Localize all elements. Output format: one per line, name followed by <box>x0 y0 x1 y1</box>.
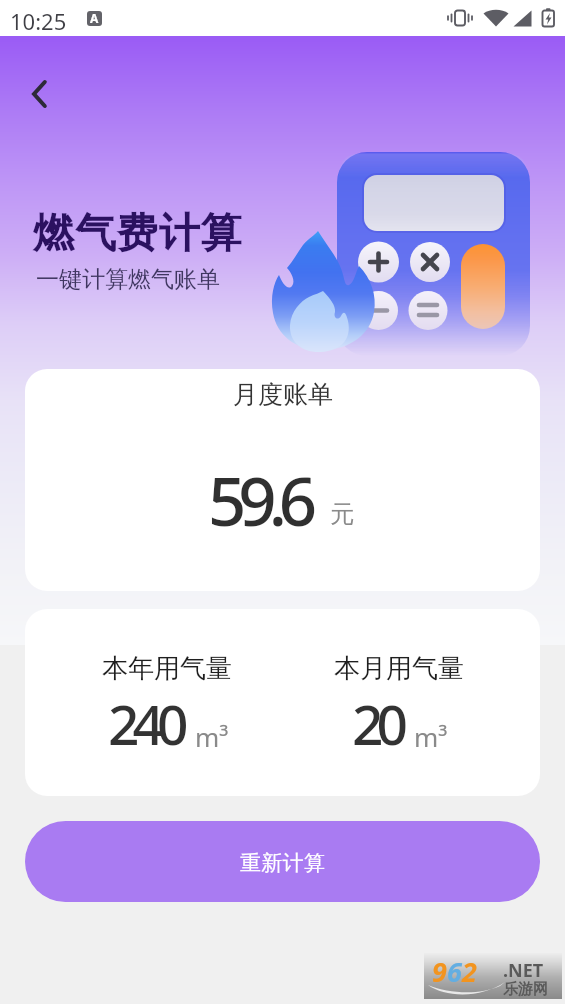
staticText: 本年用气量 <box>102 652 232 685</box>
staticText: m³ <box>414 719 448 754</box>
staticText: 一键计算燃气账单 <box>36 265 220 294</box>
staticText: m³ <box>195 719 229 754</box>
staticText: 240 <box>108 686 182 761</box>
button[interactable]: 本年用气量 <box>25 609 540 796</box>
staticText: 燃气费计算 <box>33 208 243 260</box>
staticText: 9 <box>432 953 447 990</box>
staticText: 本月用气量 <box>334 652 464 685</box>
button[interactable]: 重新计算 <box>25 821 540 902</box>
staticText: 59.6 <box>208 454 310 545</box>
staticText: 10:25 <box>10 6 67 36</box>
staticText: 2 <box>462 953 477 990</box>
staticText: .NET <box>503 958 544 983</box>
staticText: 20 <box>352 686 401 761</box>
staticText: 月度账单 <box>233 379 333 410</box>
staticText: A <box>90 11 99 25</box>
staticText: 乐游网 <box>503 980 548 999</box>
button[interactable]: Back <box>16 70 64 118</box>
staticText: 6 <box>447 953 462 990</box>
button[interactable]: 月度账单 <box>25 369 540 591</box>
staticText: 重新计算 <box>240 850 326 876</box>
staticText: 元 <box>330 499 354 529</box>
